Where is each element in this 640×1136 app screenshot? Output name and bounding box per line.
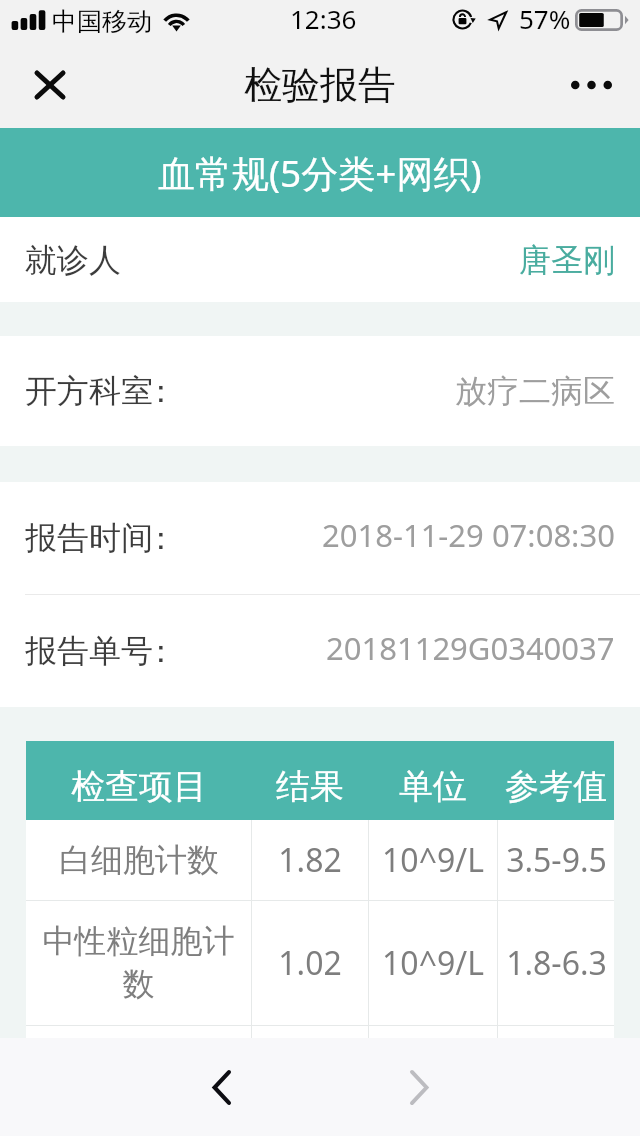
staticText: 结果 bbox=[276, 765, 344, 808]
button[interactable]: Close bbox=[20, 55, 80, 115]
staticText: 参考值 bbox=[505, 765, 607, 808]
staticText: 报告时间 bbox=[25, 518, 153, 558]
staticText: 中性粒细胞计数 bbox=[28, 921, 249, 1005]
staticText: 57% bbox=[519, 1, 571, 36]
button[interactable]: 开方科室 bbox=[0, 336, 640, 446]
staticText: 12:36 bbox=[290, 1, 357, 36]
staticText: 1.02 bbox=[278, 941, 342, 985]
button[interactable]: More options bbox=[561, 55, 621, 115]
button[interactable]: 报告单号 bbox=[0, 595, 640, 707]
staticText: 20181129G0340037 bbox=[326, 627, 615, 669]
staticText: 10^9/L bbox=[382, 838, 484, 882]
staticText: 放疗二病区 bbox=[455, 371, 615, 411]
staticText: 单位 bbox=[399, 765, 467, 808]
staticText: 检查项目 bbox=[71, 765, 207, 808]
staticText: 中国移动 bbox=[52, 6, 152, 37]
staticText: 报告单号 bbox=[25, 631, 153, 671]
staticText: 1.82 bbox=[278, 838, 342, 882]
staticText: 3.5-9.5 bbox=[506, 838, 607, 882]
button[interactable]: 报告时间 bbox=[0, 482, 640, 594]
staticText: 检验报告 bbox=[244, 61, 396, 109]
staticText: 血常规(5分类+网织) bbox=[158, 147, 482, 198]
staticText: 1.8-6.3 bbox=[506, 941, 607, 985]
button[interactable]: Forward bbox=[374, 1038, 464, 1136]
staticText: 白细胞计数 bbox=[59, 840, 219, 880]
button[interactable]: Back bbox=[176, 1038, 266, 1136]
staticText: 唐圣刚 bbox=[519, 240, 615, 280]
staticText: ： bbox=[145, 631, 177, 671]
staticText: 10^9/L bbox=[382, 941, 484, 985]
button[interactable]: 就诊人 bbox=[0, 217, 640, 302]
staticText: 2018-11-29 07:08:30 bbox=[322, 514, 615, 556]
staticText: ： bbox=[145, 518, 177, 558]
staticText: 就诊人 bbox=[25, 240, 121, 280]
staticText: 开方科室 bbox=[25, 371, 153, 411]
staticText: ： bbox=[145, 371, 177, 411]
